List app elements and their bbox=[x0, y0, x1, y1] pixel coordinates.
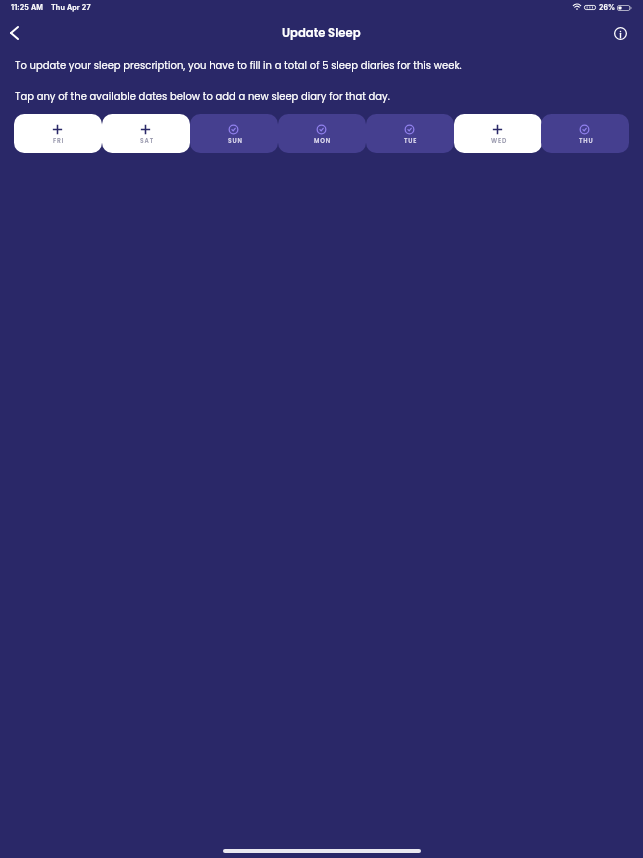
button[interactable]: Information bbox=[603, 16, 637, 50]
button[interactable]: SAT bbox=[102, 114, 190, 153]
button[interactable]: THU bbox=[541, 114, 629, 153]
staticText: THU bbox=[579, 137, 594, 145]
staticText: SUN bbox=[228, 137, 243, 145]
staticText: Update Sleep bbox=[282, 25, 361, 41]
staticText: FRI bbox=[53, 137, 65, 145]
button[interactable]: MON bbox=[278, 114, 366, 153]
staticText: TUE bbox=[404, 137, 418, 145]
button[interactable]: Back bbox=[0, 16, 28, 50]
staticText: SAT bbox=[140, 137, 154, 145]
button[interactable]: SUN bbox=[190, 114, 278, 153]
staticText: WED bbox=[491, 137, 508, 145]
button[interactable]: FRI bbox=[14, 114, 102, 153]
staticText: 11:25 AM bbox=[11, 3, 44, 12]
staticText: MON bbox=[314, 137, 332, 145]
staticText: Tap any of the available dates below to … bbox=[15, 89, 390, 103]
staticText: Thu Apr 27 bbox=[51, 3, 91, 12]
button[interactable]: TUE bbox=[366, 114, 454, 153]
button[interactable]: WED bbox=[454, 114, 542, 153]
staticText: 26% bbox=[599, 3, 616, 11]
staticText: To update your sleep prescription, you h… bbox=[15, 58, 462, 72]
